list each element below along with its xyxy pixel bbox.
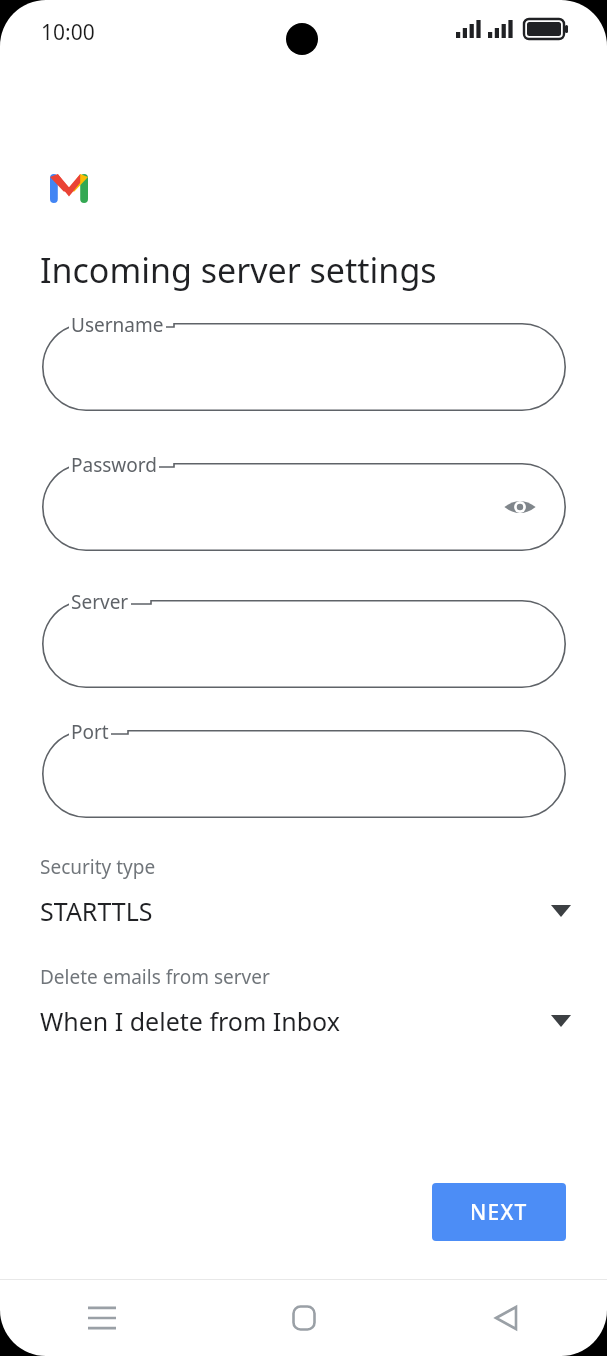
staticText: Server — [71, 589, 129, 615]
staticText: When I delete from Inbox — [40, 1004, 551, 1038]
staticText: Username — [71, 312, 164, 338]
button[interactable]: Delete emails from server — [0, 964, 607, 1038]
button[interactable]: Password — [42, 463, 566, 551]
staticText: Port — [71, 719, 109, 745]
button[interactable]: Show password — [500, 487, 540, 527]
staticText: Security type — [40, 854, 156, 880]
staticText: Password — [71, 452, 157, 478]
button[interactable]: Username — [42, 323, 566, 411]
staticText: Delete emails from server — [40, 964, 270, 990]
button[interactable]: Recent apps — [0, 1280, 203, 1356]
button[interactable]: Back — [405, 1280, 607, 1356]
button[interactable]: Server — [42, 600, 566, 688]
button[interactable]: NEXT — [432, 1183, 566, 1241]
button[interactable]: Home — [203, 1280, 405, 1356]
staticText: Incoming server settings — [40, 247, 437, 293]
button[interactable]: Port — [42, 730, 566, 818]
staticText: STARTTLS — [40, 894, 551, 928]
staticText: 10:00 — [41, 18, 95, 47]
staticText: NEXT — [470, 1198, 528, 1227]
button[interactable]: Security type — [0, 854, 607, 928]
